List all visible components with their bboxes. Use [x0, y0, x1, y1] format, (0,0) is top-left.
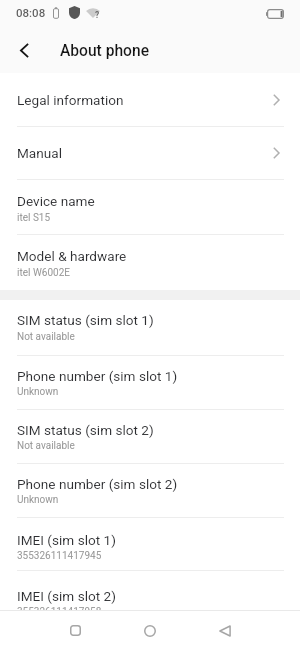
staticText: Unknown	[17, 494, 262, 506]
staticText: 08:08	[16, 6, 46, 19]
staticText: ?	[95, 10, 100, 20]
button[interactable]: Phone number (sim slot 1)	[0, 356, 300, 409]
staticText: itel W6002E	[17, 267, 262, 279]
button[interactable]: Back	[0, 29, 44, 73]
staticText: Legal information	[17, 92, 262, 108]
staticText: 355326111417945	[17, 550, 262, 562]
staticText: Unknown	[17, 386, 262, 398]
staticText: 355326111417958	[17, 606, 262, 618]
button[interactable]: Phone number (sim slot 2)	[0, 464, 300, 517]
staticText: Not available	[17, 331, 262, 343]
staticText: Phone number (sim slot 1)	[17, 368, 262, 384]
staticText: Manual	[17, 145, 262, 161]
staticText: SIM status (sim slot 1)	[17, 312, 262, 328]
button[interactable]: Home	[112, 611, 187, 650]
staticText: Phone number (sim slot 2)	[17, 476, 262, 492]
staticText: SIM status (sim slot 2)	[17, 422, 262, 438]
button[interactable]: SIM status (sim slot 1)	[0, 300, 300, 355]
staticText: About phone	[60, 42, 150, 60]
button[interactable]: IMEI (sim slot 1)	[0, 518, 300, 570]
button[interactable]: SIM status (sim slot 2)	[0, 410, 300, 463]
button[interactable]: IMEI (sim slot 2)	[0, 571, 300, 610]
staticText: Not available	[17, 440, 262, 452]
button[interactable]: Model & hardware	[0, 235, 300, 290]
button[interactable]: Manual	[0, 127, 300, 179]
staticText: itel S15	[17, 212, 262, 224]
staticText: IMEI (sim slot 1)	[17, 532, 262, 548]
staticText: Device name	[17, 193, 262, 209]
button[interactable]: Device name	[0, 180, 300, 234]
button[interactable]: Back	[187, 611, 262, 650]
staticText: IMEI (sim slot 2)	[17, 588, 262, 604]
button[interactable]: Recent apps	[38, 611, 112, 650]
button[interactable]: Legal information	[0, 73, 300, 126]
staticText: Model & hardware	[17, 248, 262, 264]
